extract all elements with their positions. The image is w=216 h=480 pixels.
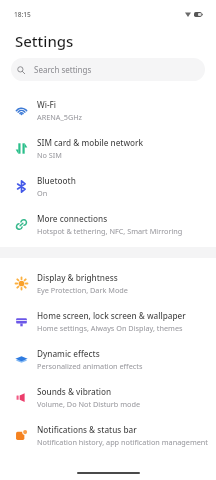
other: Home gesture bar	[77, 472, 140, 474]
button[interactable]: Search settings	[11, 58, 205, 81]
staticText: Dynamic effects	[37, 348, 100, 359]
staticText: Wi-Fi	[37, 99, 57, 110]
button[interactable]: More connections	[0, 205, 216, 243]
staticText: No SIM	[37, 150, 62, 160]
button[interactable]: Sounds & vibration	[0, 378, 216, 416]
staticText: More connections	[37, 213, 108, 224]
button[interactable]: Bluetooth	[0, 167, 216, 205]
staticText: SIM card & mobile network	[37, 137, 144, 148]
staticText: Notification history, app notification m…	[37, 437, 208, 447]
button[interactable]: Display & brightness	[0, 264, 216, 302]
staticText: Display & brightness	[37, 272, 118, 283]
button[interactable]: Wi-Fi	[0, 91, 216, 129]
staticText: Settings	[15, 31, 74, 51]
staticText: Search settings	[34, 64, 92, 75]
staticText: Hotspot & tethering, NFC, Smart Mirrorin…	[37, 226, 183, 236]
staticText: Home screen, lock screen & wallpaper	[37, 310, 186, 321]
button[interactable]: Notifications & status bar	[0, 416, 216, 454]
staticText: Personalized animation effects	[37, 361, 143, 371]
staticText: Volume, Do Not Disturb mode	[37, 399, 141, 409]
button[interactable]: Home screen, lock screen & wallpaper	[0, 302, 216, 340]
staticText: Notifications & status bar	[37, 424, 137, 435]
staticText: Sounds & vibration	[37, 386, 112, 397]
staticText: 18:15	[14, 10, 31, 19]
staticText: On	[37, 188, 48, 198]
button[interactable]: Dynamic effects	[0, 340, 216, 378]
staticText: Eye Protection, Dark Mode	[37, 285, 128, 295]
staticText: Home settings, Always On Display, themes	[37, 323, 183, 333]
button[interactable]: SIM card & mobile network	[0, 129, 216, 167]
staticText: Bluetooth	[37, 175, 76, 186]
staticText: ARENA_5GHz	[37, 112, 83, 122]
